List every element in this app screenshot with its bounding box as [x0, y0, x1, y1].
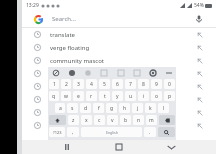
button[interactable]: v: [107, 115, 118, 125]
staticText: 54%: [194, 2, 204, 9]
button[interactable]: Insert verge floating: [195, 43, 204, 52]
staticText: 4: [90, 81, 93, 88]
staticText: e: [77, 93, 80, 100]
button[interactable]: k: [145, 103, 156, 113]
button[interactable]: translate: [22, 28, 216, 41]
button[interactable]: Space: [81, 127, 142, 137]
button[interactable]: Clipboard: [99, 68, 108, 77]
staticText: weather today: [50, 96, 91, 104]
staticText: nearby food: [50, 109, 85, 117]
button[interactable]: community mascot: [22, 54, 216, 67]
button[interactable]: Voice typing: [51, 68, 60, 77]
button[interactable]: ,: [67, 127, 79, 137]
button[interactable]: Backspace: [159, 115, 175, 125]
staticText: 0: [168, 81, 171, 88]
button[interactable]: Insert weather today: [195, 95, 204, 104]
staticText: 5: [103, 81, 106, 88]
button[interactable]: bible verse: [22, 67, 216, 80]
button[interactable]: Insert backup: [195, 82, 204, 91]
staticText: English: [106, 130, 118, 135]
button[interactable]: x: [81, 115, 92, 125]
staticText: n: [137, 117, 141, 124]
staticText: x: [85, 117, 88, 124]
button[interactable]: Insert nearby food: [195, 108, 204, 117]
button[interactable]: 5: [99, 79, 110, 89]
staticText: t: [104, 93, 106, 100]
button[interactable]: weather today: [22, 93, 216, 106]
button[interactable]: 3: [73, 79, 84, 89]
button[interactable]: GIF: [83, 68, 92, 77]
staticText: calendar: [50, 122, 75, 130]
staticText: j: [137, 105, 139, 112]
button[interactable]: g: [106, 103, 117, 113]
staticText: q: [52, 93, 56, 100]
staticText: 8: [142, 81, 145, 88]
button[interactable]: Back: [164, 140, 178, 154]
button[interactable]: Insert calendar: [195, 121, 204, 130]
button[interactable]: Settings: [148, 68, 157, 77]
staticText: u: [129, 93, 133, 100]
button[interactable]: Voice search: [194, 14, 204, 24]
button[interactable]: 2: [61, 79, 71, 89]
staticText: s: [71, 105, 74, 112]
button[interactable]: o: [151, 91, 162, 101]
staticText: Search...: [52, 15, 76, 23]
staticText: g: [110, 105, 114, 112]
button[interactable]: 4: [86, 79, 97, 89]
staticText: bible verse: [50, 70, 81, 78]
staticText: .: [149, 129, 151, 136]
button[interactable]: Stickers: [67, 68, 76, 77]
button[interactable]: nearby food: [22, 106, 216, 119]
button[interactable]: 8: [138, 79, 149, 89]
button[interactable]: Insert bible verse: [195, 69, 204, 78]
button[interactable]: l: [158, 103, 169, 113]
button[interactable]: backup: [22, 80, 216, 93]
button[interactable]: c: [94, 115, 105, 125]
staticText: community mascot: [50, 57, 105, 65]
staticText: b: [124, 117, 128, 124]
button[interactable]: Insert translate: [195, 30, 204, 39]
button[interactable]: 0: [164, 79, 175, 89]
button[interactable]: a: [55, 103, 65, 113]
staticText: a: [59, 105, 62, 112]
button[interactable]: z: [68, 115, 79, 125]
button[interactable]: calendar: [22, 119, 216, 132]
button[interactable]: More: [164, 68, 173, 77]
button[interactable]: Theme: [132, 68, 141, 77]
button[interactable]: s: [67, 103, 78, 113]
button[interactable]: h: [119, 103, 130, 113]
button[interactable]: Shift: [49, 115, 66, 125]
button[interactable]: 9: [151, 79, 162, 89]
button[interactable]: e: [73, 91, 84, 101]
button[interactable]: n: [133, 115, 144, 125]
button[interactable]: 7: [125, 79, 136, 89]
staticText: 2: [65, 81, 68, 88]
button[interactable]: b: [120, 115, 131, 125]
staticText: 9: [155, 81, 158, 88]
button[interactable]: y: [112, 91, 123, 101]
button[interactable]: j: [132, 103, 143, 113]
staticText: backup: [50, 83, 71, 91]
button[interactable]: m: [146, 115, 157, 125]
button[interactable]: w: [61, 91, 71, 101]
button[interactable]: p: [164, 91, 175, 101]
button[interactable]: r: [86, 91, 97, 101]
button[interactable]: 6: [112, 79, 123, 89]
button[interactable]: t: [99, 91, 110, 101]
button[interactable]: 1: [49, 79, 59, 89]
button[interactable]: i: [138, 91, 149, 101]
button[interactable]: f: [93, 103, 104, 113]
button[interactable]: ?123: [49, 127, 65, 137]
button[interactable]: u: [125, 91, 136, 101]
button[interactable]: Home: [112, 140, 126, 154]
button[interactable]: d: [80, 103, 91, 113]
button[interactable]: verge floating: [22, 41, 216, 54]
button[interactable]: Search...: [22, 11, 216, 27]
button[interactable]: q: [49, 91, 59, 101]
button[interactable]: Insert community mascot: [195, 56, 204, 65]
button[interactable]: Translate: [116, 68, 125, 77]
button[interactable]: Recents: [60, 140, 74, 154]
staticText: v: [111, 117, 114, 124]
button[interactable]: Search: [158, 127, 175, 137]
button[interactable]: .: [144, 127, 156, 137]
